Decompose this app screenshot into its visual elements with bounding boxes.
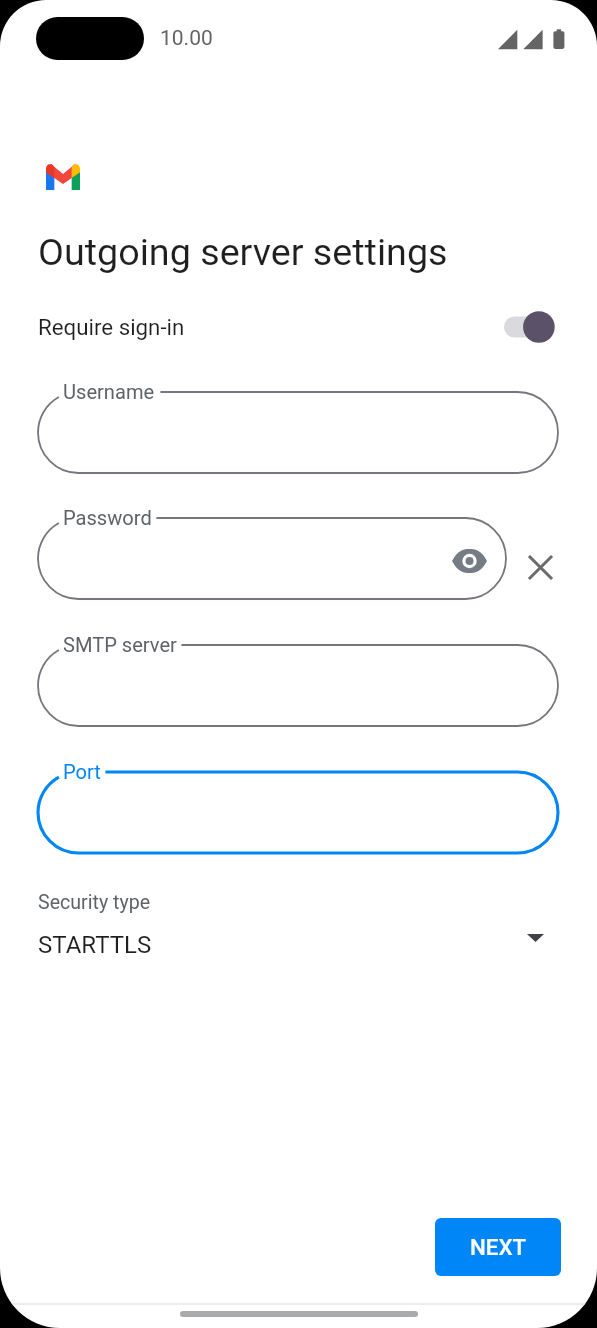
button[interactable]: Username [38,392,558,473]
button[interactable]: Clear password [518,545,563,590]
staticText: STARTTLS [38,931,152,959]
staticText: Username [63,380,155,404]
button[interactable]: Require sign-in [0,298,597,356]
staticText: Require sign-in [38,314,185,340]
staticText: 10.00 [160,26,213,51]
button[interactable]: Show password [447,538,492,583]
staticText: SMTP server [63,633,177,657]
staticText: NEXT [470,1234,527,1260]
button[interactable]: STARTTLS [0,923,597,967]
staticText: Security type [38,891,151,914]
button[interactable]: Password [38,518,506,599]
button[interactable]: SMTP server [38,645,558,726]
button[interactable]: Port [38,772,558,853]
button[interactable]: NEXT [435,1218,561,1276]
staticText: Outgoing server settings [38,230,448,274]
button[interactable]: Require sign-in toggle [504,303,562,351]
staticText: Port [63,760,101,784]
staticText: Password [63,506,152,530]
